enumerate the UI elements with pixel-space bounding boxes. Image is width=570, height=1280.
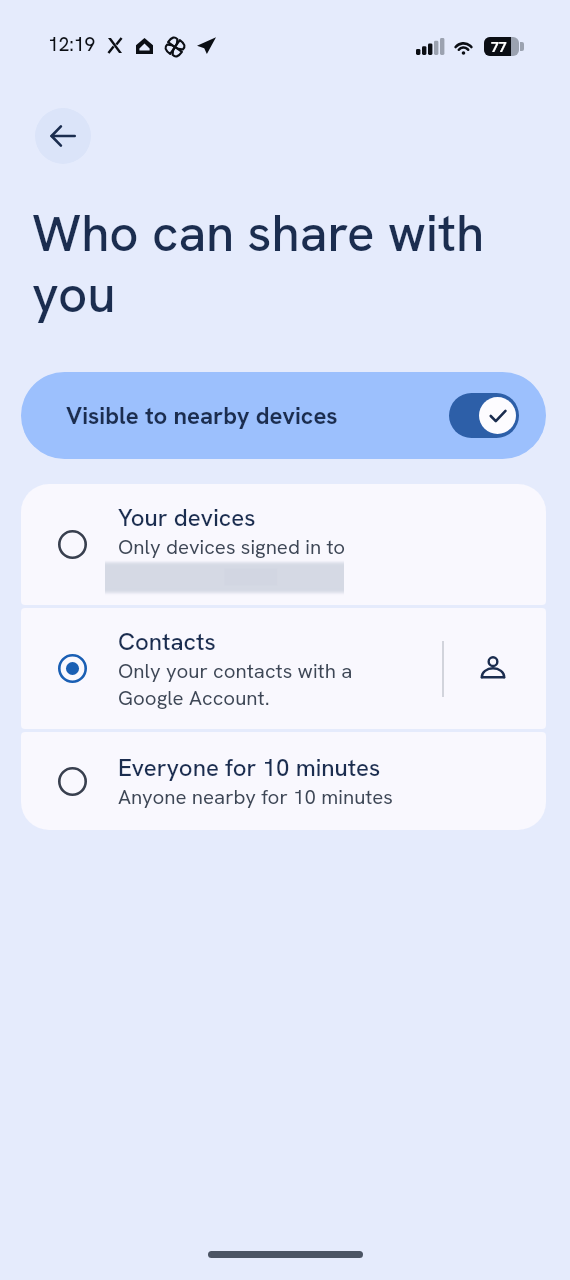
staticText: Everyone for 10 minutes (118, 752, 381, 783)
button[interactable]: Visible to nearby devices (21, 372, 546, 459)
button[interactable]: Everyone for 10 minutes (21, 732, 546, 830)
staticText: Only your contacts with a (118, 657, 353, 684)
staticText: Only devices signed in to (118, 533, 346, 560)
staticText: Contacts (118, 626, 216, 657)
staticText: Anyone nearby for 10 minutes (118, 783, 393, 810)
button[interactable]: Contacts (21, 608, 546, 729)
staticText: Your devices (118, 502, 256, 533)
staticText: 12:19 (48, 32, 96, 57)
staticText: Google Account. (118, 684, 270, 711)
staticText: Who can share with you (32, 200, 532, 327)
button[interactable]: Back (35, 108, 91, 164)
staticText: 77 (491, 38, 507, 56)
button[interactable]: Visible to nearby devices (449, 393, 519, 438)
staticText: Visible to nearby devices (66, 400, 338, 431)
button[interactable]: Manage contacts (458, 634, 528, 704)
button[interactable]: Your devices (21, 484, 546, 605)
